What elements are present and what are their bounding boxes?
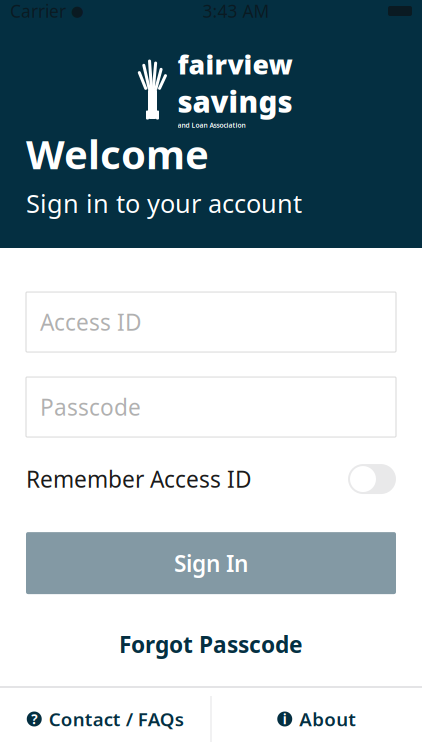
staticText: ? <box>31 710 37 728</box>
staticText: Welcome <box>26 127 209 180</box>
staticText: Remember Access ID <box>26 464 252 494</box>
button[interactable]: ? <box>0 688 210 750</box>
staticText: Contact / FAQs <box>49 707 184 731</box>
staticText: About <box>299 707 356 731</box>
button[interactable]: i <box>211 688 422 750</box>
staticText: and Loan Association <box>177 121 245 130</box>
staticText: Sign in to your account <box>26 186 302 220</box>
button[interactable]: Forgot Passcode <box>26 622 396 666</box>
staticText: Passcode <box>40 392 141 422</box>
staticText: ● <box>71 3 84 19</box>
staticText: i <box>283 710 287 728</box>
staticText: Access ID <box>40 307 142 337</box>
button[interactable]: Remember Access ID <box>348 464 396 494</box>
button[interactable]: Sign In <box>26 532 396 594</box>
staticText: savings <box>177 82 292 121</box>
staticText: fairview <box>177 46 292 82</box>
staticText: Carrier <box>10 0 66 22</box>
staticText: 3:43 AM <box>202 0 269 22</box>
staticText: Forgot Passcode <box>119 629 303 659</box>
staticText: Sign In <box>174 548 248 578</box>
